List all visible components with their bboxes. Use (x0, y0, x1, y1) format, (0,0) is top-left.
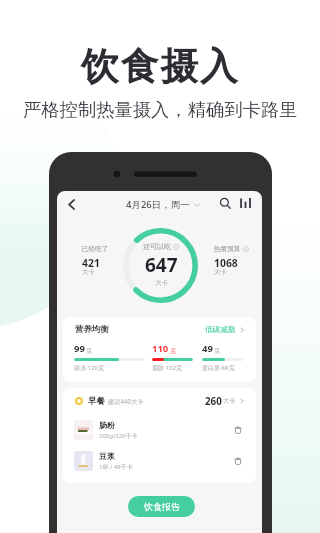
staticText: 饮食摄入 (81, 43, 240, 90)
button[interactable]: 饮食报告 (128, 496, 195, 517)
staticText: 饮食报告 (144, 501, 180, 512)
staticText: 49 (202, 342, 213, 355)
button[interactable]: 早餐 (63, 388, 256, 414)
button[interactable]: Statistics (234, 192, 256, 214)
button[interactable]: 豆浆 (63, 445, 256, 476)
staticText: 4月26日，周一 (126, 198, 190, 211)
staticText: 营养均衡 (75, 324, 109, 335)
staticText: 647 (145, 252, 178, 278)
button[interactable]: 4月26日，周一 (126, 194, 200, 215)
staticText: 99 (74, 342, 85, 355)
staticText: 克 (86, 347, 92, 355)
staticText: 还可以吃 (143, 242, 171, 251)
staticText: 低碳减脂 (205, 325, 236, 335)
button[interactable]: 营养均衡 (63, 317, 256, 382)
button[interactable]: Search (214, 192, 236, 214)
staticText: 421 (82, 256, 100, 270)
staticText: 蛋白质·88克 (202, 364, 235, 372)
staticText: 早餐 (88, 396, 105, 407)
staticText: 脂肪·102克 (152, 364, 182, 372)
staticText: 克 (170, 347, 176, 355)
staticText: 1068 (214, 256, 238, 270)
staticText: 建议440大卡 (108, 397, 144, 405)
staticText: 严格控制热量摄入，精确到卡路里 (23, 98, 298, 121)
staticText: 大卡 (155, 279, 168, 287)
staticText: 热量预算 (214, 245, 241, 253)
staticText: 大卡 (82, 268, 95, 276)
staticText: 1杯 / 48千卡 (99, 463, 133, 471)
staticText: 豆浆 (99, 451, 115, 461)
staticText: 已经吃了 (82, 245, 109, 253)
staticText: 碳水·120克 (74, 364, 104, 372)
staticText: 110 (152, 342, 169, 355)
staticText: 大卡 (214, 268, 227, 276)
staticText: 大卡 (223, 397, 236, 405)
staticText: 260 (205, 395, 222, 408)
button[interactable]: Delete (230, 453, 246, 469)
staticText: 肠粉 (99, 420, 115, 430)
button[interactable]: 肠粉 (63, 414, 256, 445)
button[interactable]: Delete (230, 422, 246, 438)
button[interactable]: Back (59, 192, 83, 216)
staticText: 克 (214, 347, 220, 355)
staticText: 200g/220千卡 (99, 432, 138, 440)
